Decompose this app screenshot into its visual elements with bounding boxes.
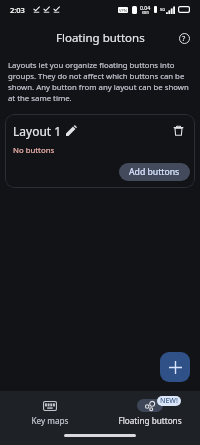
staticText: Layouts let you organize floating button… bbox=[8, 60, 190, 104]
staticText: 0.04 bbox=[140, 4, 151, 11]
button[interactable]: Add layout bbox=[160, 352, 190, 382]
button[interactable]: Floating buttons bbox=[100, 391, 200, 404]
staticText: KB/S bbox=[142, 11, 149, 15]
staticText: 2:03 bbox=[10, 5, 25, 15]
staticText: Key maps bbox=[31, 415, 69, 426]
staticText: Layout 1 bbox=[13, 123, 62, 139]
staticText: 5G bbox=[160, 7, 166, 12]
staticText: ? bbox=[182, 33, 186, 43]
staticText: Floating buttons bbox=[118, 415, 182, 426]
button[interactable]: Delete layout bbox=[168, 120, 188, 140]
staticText: Add buttons bbox=[129, 166, 180, 178]
button[interactable]: Help bbox=[174, 28, 194, 48]
staticText: Floating buttons bbox=[56, 30, 145, 46]
staticText: No buttons bbox=[13, 145, 55, 156]
button[interactable]: Layout 1 bbox=[5, 114, 195, 188]
button[interactable]: Add buttons bbox=[119, 163, 190, 181]
staticText: VPN bbox=[119, 8, 127, 13]
button[interactable]: Key maps bbox=[0, 391, 100, 404]
staticText: NEW! bbox=[160, 396, 178, 406]
button[interactable]: Rename layout bbox=[62, 121, 80, 139]
